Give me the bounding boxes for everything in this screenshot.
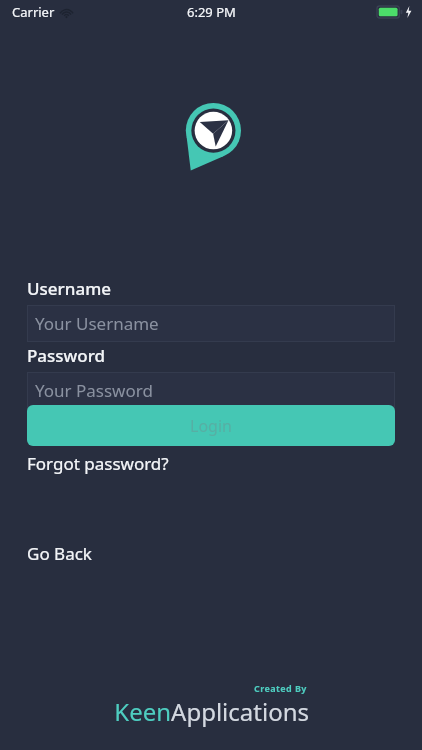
button[interactable]: Login [27,405,395,446]
staticText: 6:29 PM [187,3,236,21]
staticText: Username [27,277,111,300]
staticText: Your Username [35,312,159,335]
staticText: Your Password [35,379,153,402]
staticText: Go Back [27,542,92,565]
staticText: Carrier [12,3,55,21]
button[interactable]: Go Back [27,540,92,567]
button[interactable]: Your Username [27,305,395,342]
button[interactable]: Your Password [27,372,395,409]
button[interactable]: Forgot password? [27,450,169,477]
staticText: Login [190,415,232,437]
staticText: Created By [254,682,307,694]
staticText: Password [27,344,106,367]
staticText: Forgot password? [27,452,169,475]
staticText: KeenApplications [114,695,309,728]
